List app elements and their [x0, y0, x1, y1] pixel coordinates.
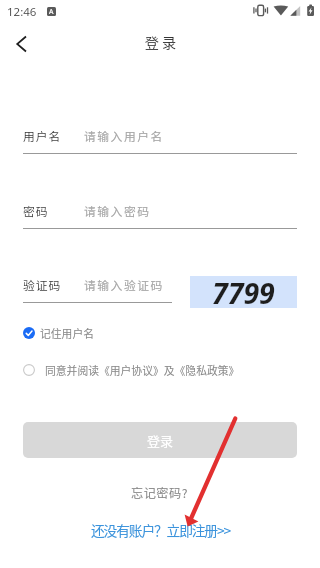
staticText: 请输入密码 — [84, 202, 151, 219]
button[interactable]: 还没有账户？立即注册>> — [83, 517, 238, 543]
button[interactable]: 记住用户名 — [23, 325, 94, 341]
staticText: 请输入验证码 — [84, 276, 164, 293]
button[interactable]: 同意并阅读《用户协议》及《隐私政策》 — [23, 362, 240, 378]
staticText: 用户名 — [23, 127, 62, 144]
button[interactable]: Back — [0, 22, 44, 66]
staticText: 密码 — [23, 202, 49, 219]
staticText: 登录 — [2, 32, 320, 53]
staticText: 同意并阅读《用户协议》及《隐私政策》 — [45, 362, 240, 378]
button[interactable]: 忘记密码? — [123, 481, 197, 505]
button[interactable]: 登录 — [23, 422, 297, 458]
staticText: 验证码 — [23, 276, 62, 293]
staticText: 登录 — [147, 431, 174, 450]
staticText: 请输入用户名 — [84, 127, 164, 144]
staticText: 还没有账户？立即注册>> — [91, 520, 230, 540]
staticText: 记住用户名 — [40, 325, 94, 341]
button[interactable]: Refresh captcha — [190, 276, 297, 308]
staticText: 7799 — [212, 274, 275, 306]
staticText: A — [49, 7, 54, 16]
staticText: 忘记密码? — [131, 484, 189, 502]
staticText: 12:46 — [7, 4, 37, 20]
